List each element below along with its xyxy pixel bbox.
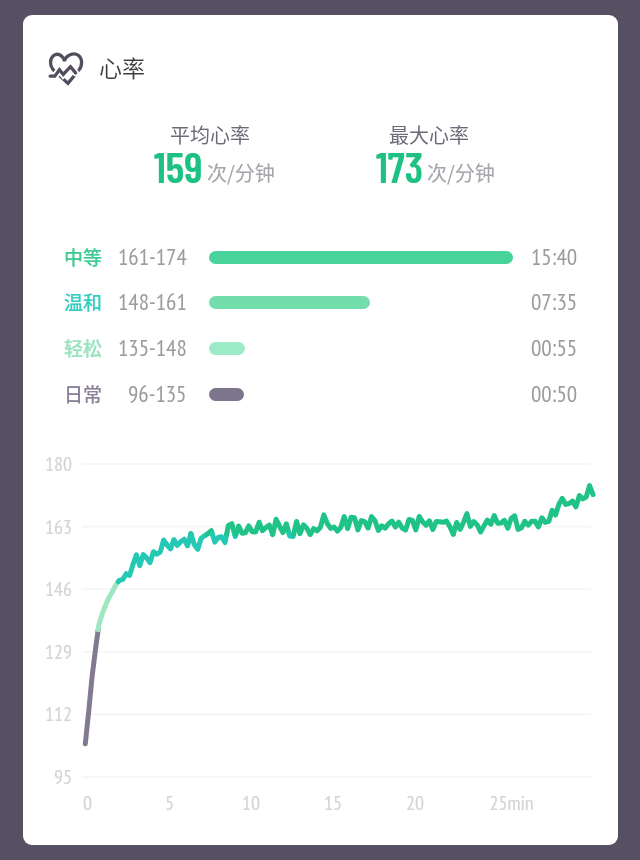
staticText: 173: [376, 140, 423, 186]
staticText: 95: [54, 764, 72, 790]
staticText: 5: [165, 790, 174, 816]
button[interactable]: 中等: [40, 235, 596, 279]
staticText: 中等: [64, 243, 103, 271]
staticText: 10: [242, 790, 260, 816]
staticText: 0: [83, 790, 92, 816]
staticText: 次/分钟: [427, 158, 495, 187]
button[interactable]: 温和: [40, 280, 596, 324]
staticText: 135-148: [118, 333, 187, 363]
staticText: 180: [45, 451, 72, 477]
staticText: 129: [45, 639, 72, 665]
button[interactable]: 日常: [40, 372, 596, 416]
staticText: 心率: [99, 50, 145, 83]
staticText: 00:50: [531, 379, 578, 409]
staticText: 20: [406, 790, 424, 816]
staticText: 148-161: [118, 287, 187, 317]
staticText: 15: [324, 790, 342, 816]
button[interactable]: 最大心率: [329, 110, 529, 144]
button[interactable]: Heart rate: [49, 51, 145, 86]
staticText: 159: [154, 140, 203, 186]
staticText: 最大心率: [389, 120, 469, 149]
staticText: 00:55: [531, 333, 578, 363]
staticText: 日常: [64, 380, 103, 408]
staticText: 146: [45, 576, 72, 602]
staticText: 163: [45, 514, 72, 540]
staticText: 161-174: [118, 242, 187, 272]
staticText: 平均心率: [170, 120, 250, 149]
button[interactable]: 平均心率: [110, 110, 310, 144]
staticText: 15:40: [531, 242, 578, 272]
button[interactable]: 轻松: [40, 326, 596, 370]
staticText: 112: [45, 701, 72, 727]
button[interactable]: 159: [114, 149, 314, 195]
staticText: 07:35: [531, 287, 578, 317]
staticText: 96-135: [128, 379, 187, 409]
staticText: 温和: [64, 288, 103, 316]
staticText: 次/分钟: [207, 158, 275, 187]
staticText: 25min: [489, 790, 534, 816]
button[interactable]: 173: [335, 149, 535, 195]
staticText: 轻松: [64, 334, 103, 362]
